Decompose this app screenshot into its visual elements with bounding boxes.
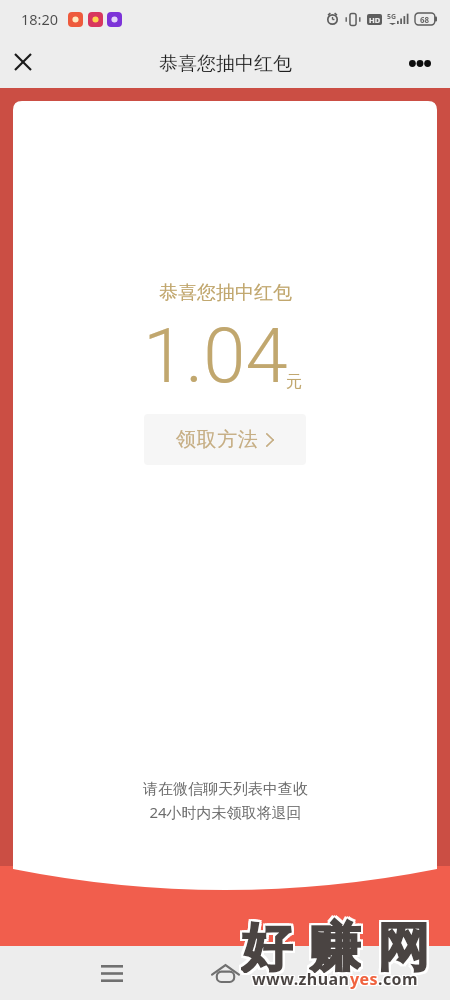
staticText: www.zhuan <box>252 967 350 989</box>
staticText: 元 <box>286 372 302 392</box>
staticText: .com <box>379 967 419 989</box>
staticText: 赚 <box>311 913 363 971</box>
staticText: 赚 <box>309 917 361 975</box>
staticText: 5G <box>387 12 397 22</box>
staticText: 1.04 <box>143 311 288 400</box>
staticText: .com <box>377 968 417 990</box>
staticText: 24小时内未领取将退回 <box>149 802 302 822</box>
staticText: 网 <box>379 915 431 973</box>
staticText: .com <box>377 969 417 991</box>
staticText: www.zhuan <box>251 968 349 990</box>
staticText: 网 <box>375 915 427 973</box>
staticText: .com <box>379 969 419 991</box>
staticText: 18:20 <box>21 9 59 29</box>
staticText: www.zhuan <box>253 969 351 991</box>
staticText: 好 <box>243 915 295 973</box>
staticText: 赚 <box>307 917 359 975</box>
staticText: 网 <box>375 913 427 971</box>
staticText: 好 <box>239 915 291 973</box>
staticText: yes <box>349 968 377 990</box>
staticText: www.zhuan <box>253 968 351 990</box>
staticText: yes <box>351 968 379 990</box>
staticText: 好 <box>241 917 293 975</box>
staticText: 好 <box>239 913 291 971</box>
staticText: www.zhuan <box>253 967 351 989</box>
staticText: 赚 <box>307 913 359 971</box>
staticText: 请在微信聊天列表中查收 <box>143 780 308 799</box>
button[interactable]: More options <box>398 38 450 88</box>
staticText: 好 <box>243 917 295 975</box>
staticText: yes <box>350 968 378 990</box>
staticText: yes <box>349 967 377 989</box>
staticText: www.zhuan <box>252 968 350 990</box>
staticText: 网 <box>377 917 429 975</box>
staticText: 好 <box>239 917 291 975</box>
button[interactable]: 领取方法 <box>144 414 306 465</box>
staticText: 网 <box>377 915 429 973</box>
staticText: 恭喜您抽中红包 <box>159 52 292 76</box>
staticText: 赚 <box>309 915 361 973</box>
staticText: 好 <box>241 913 293 971</box>
staticText: .com <box>378 967 418 989</box>
staticText: 恭喜您抽中红包 <box>159 281 292 305</box>
staticText: 网 <box>375 917 427 975</box>
staticText: 好 <box>241 915 293 973</box>
staticText: 好 <box>243 913 295 971</box>
staticText: 网 <box>379 917 431 975</box>
staticText: www.zhuan <box>251 969 349 991</box>
staticText: HD <box>369 15 381 25</box>
staticText: 网 <box>379 913 431 971</box>
staticText: .com <box>377 967 417 989</box>
staticText: 赚 <box>311 917 363 975</box>
staticText: yes <box>351 967 379 989</box>
staticText: 赚 <box>309 913 361 971</box>
staticText: 赚 <box>311 915 363 973</box>
staticText: .com <box>379 968 419 990</box>
staticText: .com <box>378 969 418 991</box>
staticText: 68 <box>420 14 430 25</box>
button[interactable]: Close <box>0 38 46 88</box>
staticText: .com <box>378 968 418 990</box>
staticText: yes <box>351 969 379 991</box>
staticText: www.zhuan <box>251 967 349 989</box>
staticText: 网 <box>377 913 429 971</box>
staticText: 赚 <box>307 915 359 973</box>
staticText: yes <box>350 969 378 991</box>
staticText: 领取方法 <box>176 427 259 452</box>
button[interactable]: Home <box>195 946 255 1000</box>
button[interactable]: Recent apps <box>82 946 142 1000</box>
staticText: www.zhuan <box>252 969 350 991</box>
staticText: yes <box>350 967 378 989</box>
staticText: yes <box>349 969 377 991</box>
